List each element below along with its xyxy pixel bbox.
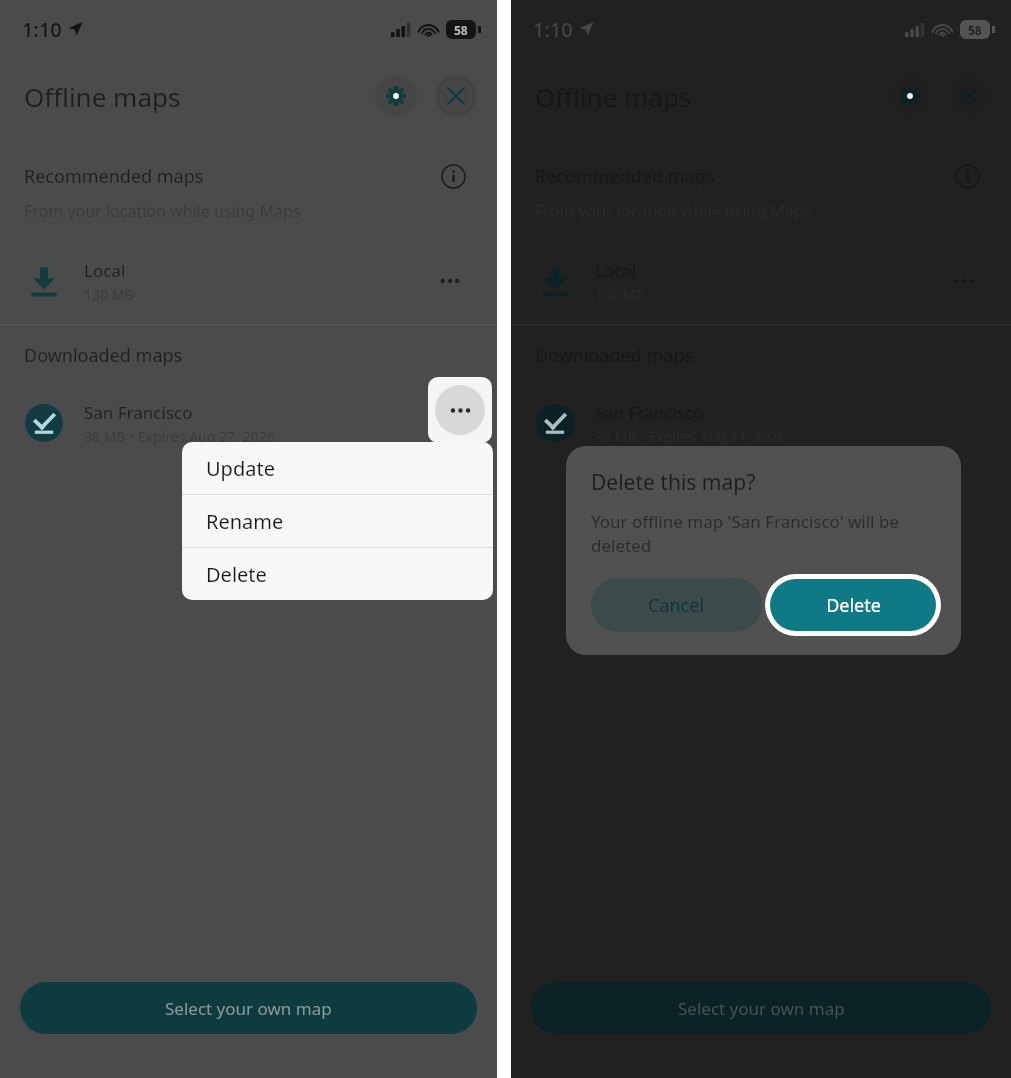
staticText: Rename	[206, 508, 284, 535]
button[interactable]: San Francisco	[0, 392, 497, 454]
button[interactable]: San Francisco	[511, 392, 1011, 454]
button[interactable]: Info	[439, 162, 467, 190]
button[interactable]: Delete	[182, 548, 493, 600]
staticText: Recommended maps	[24, 164, 204, 189]
button[interactable]: Info	[953, 162, 981, 190]
button[interactable]: Select your own map	[20, 982, 477, 1034]
staticText: Select your own map	[678, 997, 845, 1020]
staticText: Delete this map?	[591, 468, 756, 497]
button[interactable]: Close	[435, 75, 477, 117]
button[interactable]: Select your own map	[531, 982, 991, 1034]
button[interactable]: More options for Local	[431, 262, 469, 300]
button[interactable]: Cancel	[591, 578, 762, 632]
button[interactable]: Rename	[182, 495, 493, 547]
staticText: Local	[84, 259, 126, 282]
staticText: Your offline map 'San Francisco' will be…	[591, 510, 941, 557]
staticText: Delete	[206, 561, 267, 588]
staticText: Offline maps	[535, 79, 692, 114]
staticText: Select your own map	[165, 997, 332, 1020]
staticText: Offline maps	[24, 79, 181, 114]
staticText: 98 MB • Expires Aug 27, 2026	[84, 427, 275, 446]
staticText: San Francisco	[84, 401, 193, 424]
button[interactable]: More options for San Francisco	[435, 385, 485, 435]
button[interactable]: Delete	[770, 579, 936, 631]
staticText: Update	[206, 455, 275, 482]
staticText: 58	[454, 22, 468, 38]
staticText: 1:10	[22, 16, 62, 43]
staticText: From your location while using Maps	[24, 200, 301, 222]
button[interactable]: Update	[182, 442, 493, 494]
button[interactable]: Settings	[889, 75, 931, 117]
staticText: Cancel	[648, 593, 705, 618]
staticText: 1:10	[533, 16, 573, 43]
button[interactable]: Local	[0, 250, 497, 312]
staticText: Delete	[826, 593, 881, 618]
staticText: Downloaded maps	[24, 343, 183, 368]
staticText: 130 MB	[84, 285, 134, 304]
button[interactable]: Settings	[375, 75, 417, 117]
button[interactable]: Close	[949, 75, 991, 117]
staticText: 58	[968, 22, 982, 38]
